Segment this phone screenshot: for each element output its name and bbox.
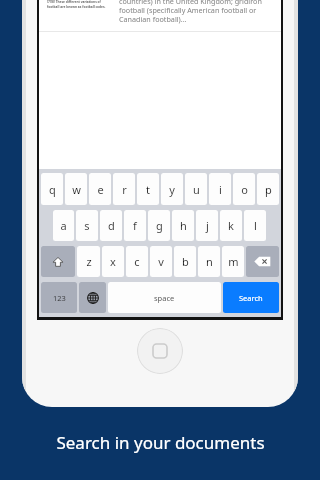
button[interactable]: d — [100, 210, 122, 241]
button[interactable]: f — [124, 210, 146, 241]
staticText: j — [206, 218, 209, 233]
staticText: o — [241, 182, 248, 197]
button[interactable]: v — [150, 246, 172, 277]
staticText: soccer in some countries) in the United … — [47, 0, 113, 9]
button[interactable]: q — [41, 173, 63, 205]
staticText: space — [154, 293, 175, 303]
staticText: Search in your documents — [56, 431, 265, 454]
staticText: e — [97, 182, 104, 197]
staticText: f — [133, 218, 137, 233]
staticText: w — [72, 182, 81, 197]
staticText: x — [110, 254, 116, 269]
staticText: g — [156, 218, 163, 233]
staticText: k — [228, 218, 234, 233]
button[interactable]: l — [244, 210, 266, 241]
staticText: d — [108, 218, 115, 233]
staticText: s — [84, 218, 90, 233]
staticText: t — [146, 182, 150, 197]
button[interactable]: u — [185, 173, 207, 205]
button[interactable]: j — [196, 210, 218, 241]
staticText: v — [158, 254, 164, 269]
staticText: z — [86, 254, 92, 269]
staticText: m — [228, 254, 239, 269]
staticText: l — [254, 218, 257, 233]
staticText: a — [60, 218, 67, 233]
button[interactable]: 123 — [41, 282, 77, 313]
button[interactable]: w — [65, 173, 87, 205]
staticText: u — [193, 182, 200, 197]
staticText: c — [134, 254, 140, 269]
button[interactable]: c — [126, 246, 148, 277]
button[interactable]: g — [148, 210, 170, 241]
button[interactable]: p — [257, 173, 279, 205]
button[interactable]: s — [76, 210, 98, 241]
button[interactable]: m — [222, 246, 244, 277]
button[interactable]: h — [172, 210, 194, 241]
staticText: b — [182, 254, 189, 269]
button[interactable]: Search — [223, 282, 279, 313]
button[interactable]: r — [113, 173, 135, 205]
button[interactable]: a — [53, 210, 74, 241]
staticText: i — [219, 182, 222, 197]
button[interactable]: z — [77, 246, 100, 277]
staticText: n — [206, 254, 213, 269]
staticText: h — [180, 218, 187, 233]
staticText: r — [122, 182, 127, 197]
staticText: understood to refer to whichever form of… — [119, 0, 273, 24]
staticText: y — [169, 182, 175, 197]
button[interactable]: Home — [137, 328, 183, 374]
button[interactable]: Switch keyboard language — [79, 282, 106, 313]
button[interactable]: o — [233, 173, 255, 205]
button[interactable]: t — [137, 173, 159, 205]
button[interactable]: b — [174, 246, 196, 277]
button[interactable]: k — [220, 210, 242, 241]
staticText: 123 — [53, 293, 66, 303]
button[interactable]: x — [102, 246, 124, 277]
staticText: q — [49, 182, 56, 197]
button[interactable]: y — [161, 173, 183, 205]
button[interactable]: Backspace — [246, 246, 279, 277]
button[interactable]: space — [108, 282, 221, 313]
staticText: p — [265, 182, 272, 197]
staticText: Search — [239, 293, 263, 303]
button[interactable]: i — [209, 173, 231, 205]
button[interactable]: e — [89, 173, 111, 205]
button[interactable]: n — [198, 246, 220, 277]
button[interactable]: Shift — [41, 246, 75, 277]
